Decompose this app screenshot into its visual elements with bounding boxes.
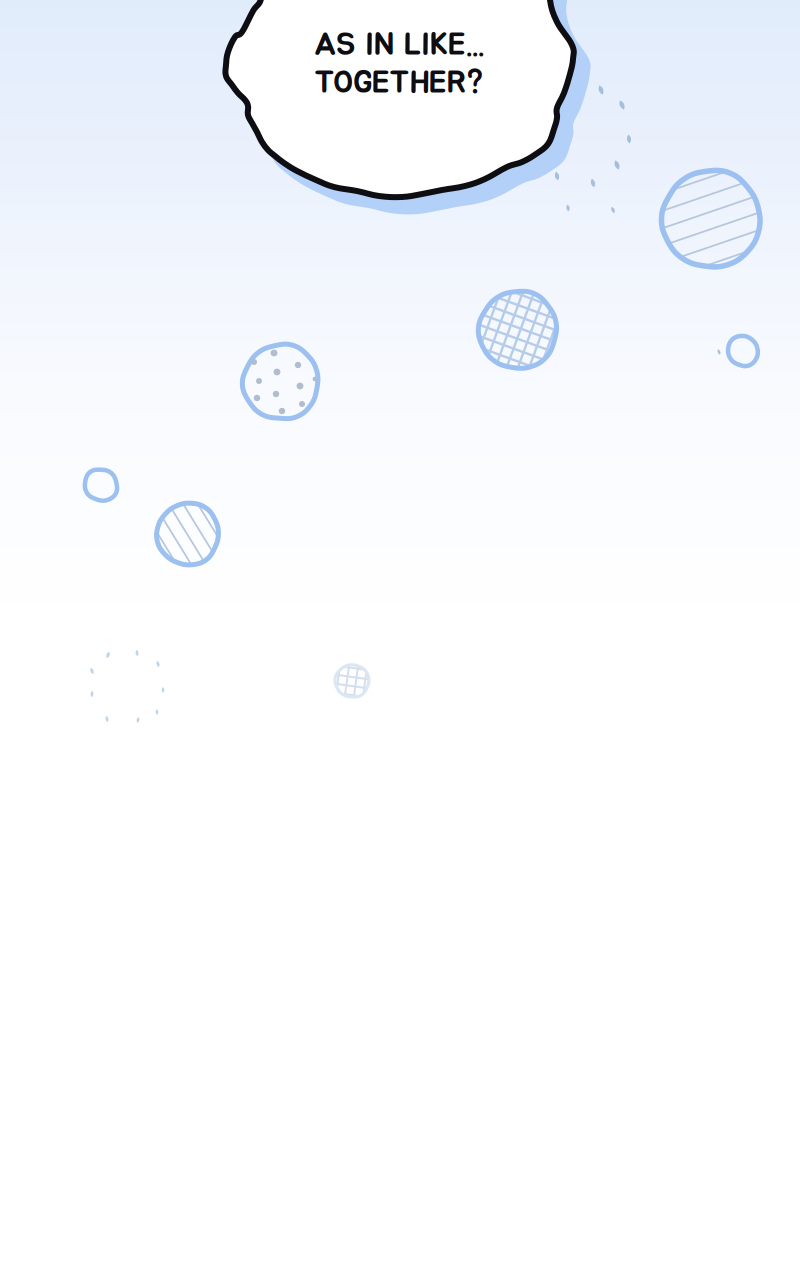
staticText: AS IN LIKE... — [314, 29, 484, 61]
staticText: TOGETHER? — [314, 67, 484, 99]
